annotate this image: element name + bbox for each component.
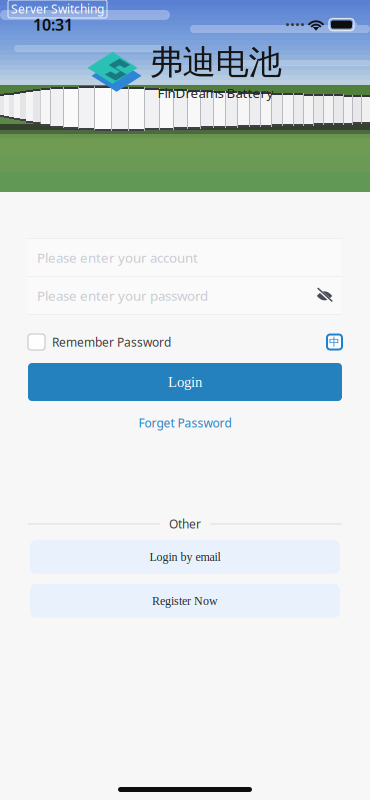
- staticText: 中: [329, 335, 340, 348]
- staticText: 10:31: [33, 14, 73, 35]
- button[interactable]: Language: [327, 329, 342, 354]
- staticText: Login by email: [149, 550, 220, 563]
- staticText: Other: [169, 516, 201, 532]
- staticText: Login: [168, 374, 202, 390]
- staticText: Server Switching: [11, 1, 104, 17]
- button[interactable]: Login: [28, 363, 342, 401]
- button[interactable]: Remember Password: [28, 329, 171, 355]
- staticText: Remember Password: [52, 334, 171, 350]
- button[interactable]: Login by email: [30, 540, 340, 574]
- staticText: Forget Password: [138, 415, 231, 431]
- button[interactable]: Register Now: [30, 584, 340, 618]
- staticText: Please enter your password: [37, 287, 208, 304]
- staticText: FinDreams Battery: [157, 84, 273, 102]
- button[interactable]: Forget Password: [128, 410, 241, 436]
- staticText: Please enter your account: [37, 249, 198, 266]
- staticText: 弗迪电池: [149, 42, 281, 83]
- staticText: Register Now: [152, 594, 218, 607]
- button[interactable]: Show password: [316, 277, 342, 313]
